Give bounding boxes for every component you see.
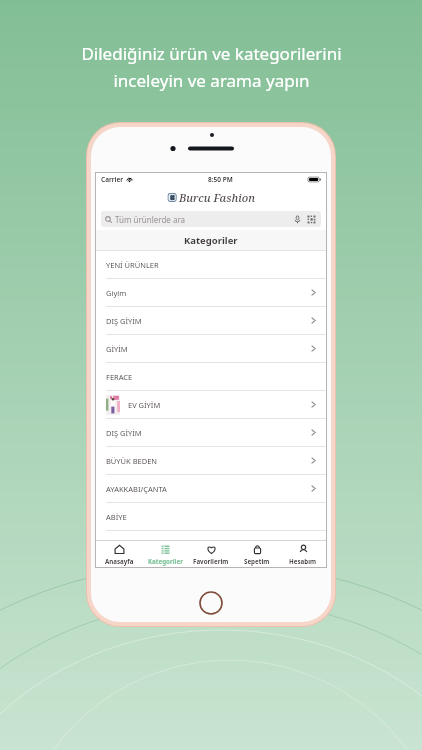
button[interactable]: Sesli arama: [292, 214, 303, 225]
staticText: DIŞ GİYİM: [106, 316, 142, 326]
button[interactable]: Favorilerim: [188, 541, 234, 567]
button[interactable]: Kategoriler: [142, 541, 188, 567]
staticText: Burcu Fashion: [179, 190, 255, 205]
staticText: GİYİM: [106, 344, 128, 354]
staticText: Favorilerim: [193, 557, 229, 565]
button[interactable]: BÜYÜK BEDEN: [96, 447, 326, 475]
staticText: Hesabım: [289, 557, 317, 565]
staticText: EV GİYİM: [128, 400, 161, 410]
button[interactable]: AYAKKABI/ÇANTA: [96, 475, 326, 503]
staticText: Anasayfa: [105, 557, 134, 565]
staticText: Carrier: [101, 175, 124, 184]
button[interactable]: DIŞ GİYİM: [96, 419, 326, 447]
button[interactable]: ABİYE: [96, 503, 326, 531]
staticText: Kategoriler: [148, 557, 183, 565]
staticText: Kategoriler: [184, 234, 238, 247]
button[interactable]: EV GİYİM: [96, 391, 326, 419]
button[interactable]: Barkod tara: [306, 214, 317, 225]
button[interactable]: Anasayfa: [96, 541, 142, 567]
button[interactable]: Giyim: [96, 279, 326, 307]
staticText: BÜYÜK BEDEN: [106, 456, 158, 466]
button[interactable]: YENİ ÜRÜNLER: [96, 251, 326, 279]
staticText: YENİ ÜRÜNLER: [106, 260, 159, 270]
button[interactable]: Hesabım: [280, 541, 326, 567]
staticText: DIŞ GİYİM: [106, 428, 142, 438]
staticText: Giyim: [106, 288, 127, 298]
button[interactable]: FERACE: [96, 363, 326, 391]
staticText: inceleyin ve arama yapın: [113, 69, 310, 92]
button[interactable]: GİYİM: [96, 335, 326, 363]
staticText: FERACE: [106, 372, 133, 382]
staticText: Sepetim: [244, 557, 270, 565]
button[interactable]: DIŞ GİYİM: [96, 307, 326, 335]
staticText: 8:50 PM: [208, 175, 233, 184]
staticText: ABİYE: [106, 512, 127, 522]
staticText: Dilediğiniz ürün ve kategorilerini: [81, 42, 342, 65]
button[interactable]: Sepetim: [234, 541, 280, 567]
staticText: AYAKKABI/ÇANTA: [106, 484, 167, 494]
staticText: Tüm ürünlerde ara: [115, 214, 186, 225]
button[interactable]: Tüm ürünlerde ara: [101, 211, 321, 227]
